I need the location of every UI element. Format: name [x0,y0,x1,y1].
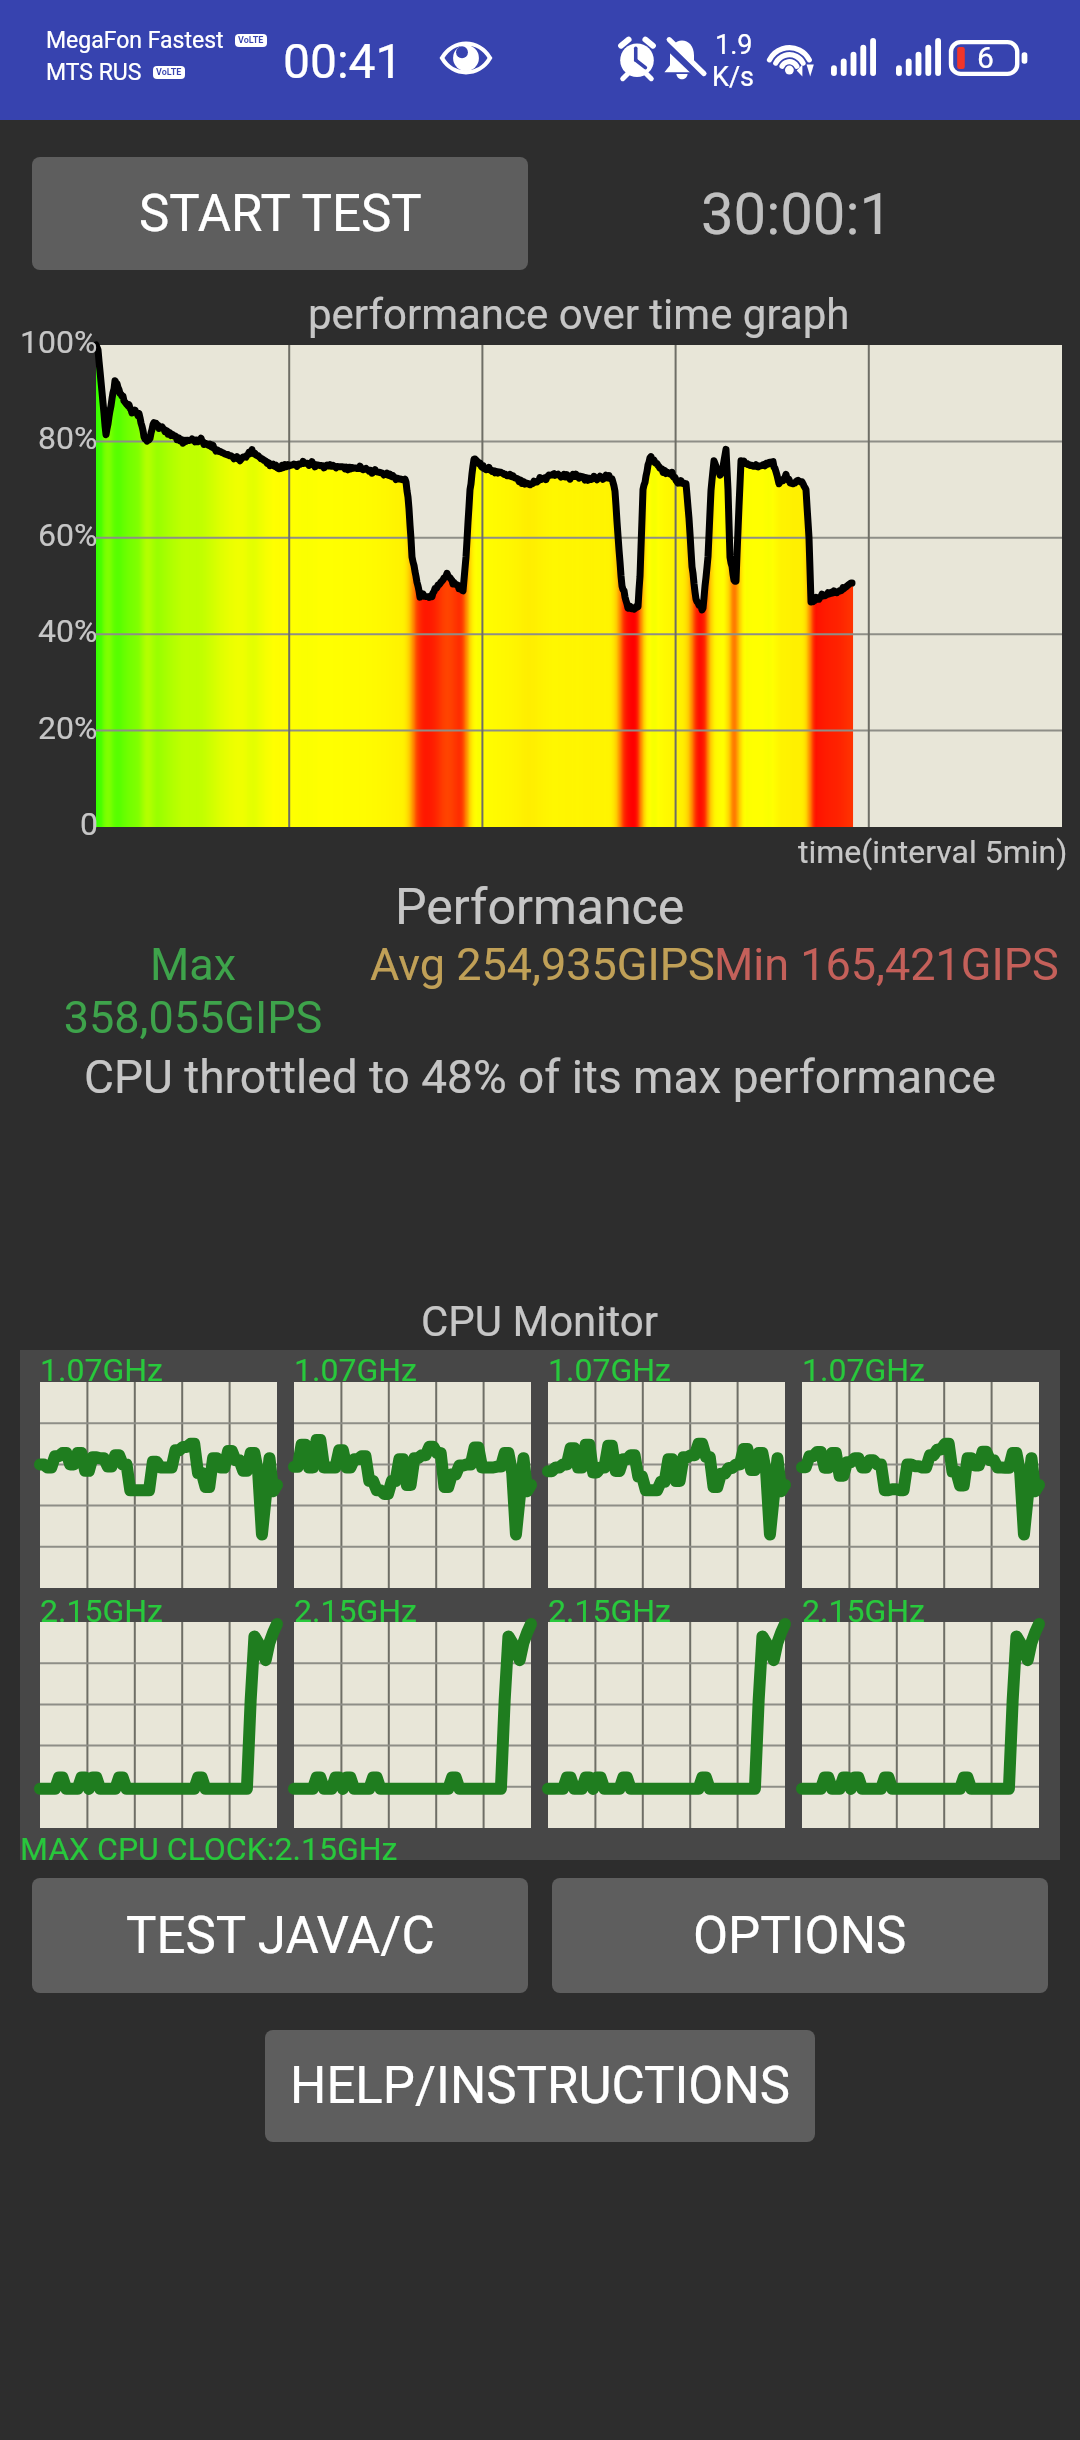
staticText: MTS RUS [46,59,142,86]
staticText: VoLTE [156,67,182,78]
button[interactable]: START TEST [32,157,528,270]
staticText: MAX CPU CLOCK:2.15GHz [20,1830,398,1868]
button[interactable]: OPTIONS [552,1878,1048,1993]
staticText: Performance [395,878,685,937]
button[interactable]: TEST JAVA/C [32,1878,528,1993]
staticText: 1.07GHz [294,1351,417,1389]
staticText: 60% [38,516,98,554]
staticText: 0 [80,805,98,843]
staticText: 1.07GHz [802,1351,925,1389]
button[interactable]: HELP/INSTRUCTIONS [265,2030,815,2142]
staticText: Avg 254,935GIPS [370,938,715,991]
staticText: TEST JAVA/C [126,1906,435,1966]
staticText: HELP/INSTRUCTIONS [290,2056,791,2116]
staticText: performance over time graph [308,290,850,339]
staticText: 6 [977,40,994,75]
other: Eye comfort [441,41,491,75]
staticText: CPU Monitor [421,1297,659,1346]
staticText: 80% [38,419,98,457]
staticText: 100% [20,323,98,361]
staticText: 1.9 [715,29,753,61]
staticText: K/s [712,61,755,93]
staticText: 2.15GHz [294,1592,417,1630]
staticText: 20% [38,709,98,747]
staticText: MegaFon Fastest [46,27,224,54]
staticText: 30:00:1 [701,180,893,248]
staticText: 40% [38,612,98,650]
other: Silent mode [662,37,702,81]
staticText: 2.15GHz [40,1592,163,1630]
staticText: START TEST [139,184,422,244]
staticText: OPTIONS [693,1906,907,1966]
other: Wi-Fi [766,36,818,82]
staticText: VoLTE [238,35,264,46]
staticText: Min 165,421GIPS [714,938,1059,991]
staticText: time(interval 5min) [798,833,1068,871]
staticText: 1.07GHz [548,1351,671,1389]
other: Alarm [616,36,658,80]
staticText: CPU throttled to 48% of its max performa… [84,1050,996,1104]
staticText: 00:41 [283,33,403,89]
staticText: 2.15GHz [548,1592,671,1630]
staticText: 1.07GHz [40,1351,163,1389]
staticText: Max 358,055GIPS [33,938,353,1044]
staticText: 2.15GHz [802,1592,925,1630]
